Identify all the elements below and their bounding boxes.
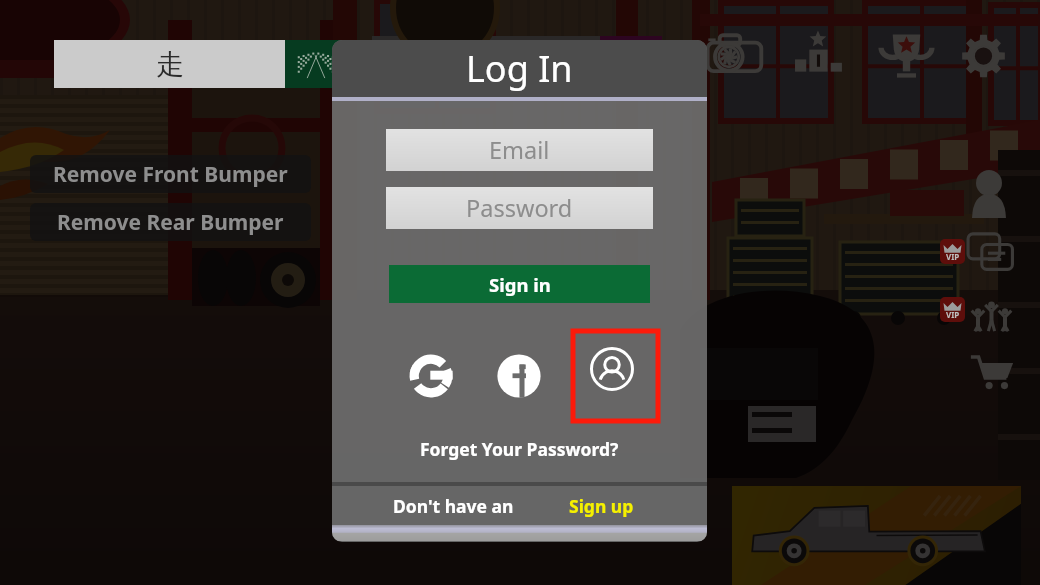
button[interactable]: Trophies xyxy=(880,32,933,80)
button[interactable]: Sign up xyxy=(569,494,634,518)
button[interactable]: Settings xyxy=(960,33,1007,79)
staticText: Forget Your Password? xyxy=(420,437,619,461)
button[interactable]: Continue as guest xyxy=(573,331,658,421)
button[interactable]: Sign in with Facebook xyxy=(486,331,552,421)
button[interactable]: 走 xyxy=(54,40,285,88)
staticText: Sign up xyxy=(569,494,634,518)
button[interactable]: Remove Rear Bumper xyxy=(30,203,311,241)
staticText: Email xyxy=(489,134,550,166)
button[interactable]: Password xyxy=(386,187,653,229)
button[interactable]: Advertisement xyxy=(732,486,1021,585)
button[interactable]: Email xyxy=(386,129,653,171)
staticText: VIP xyxy=(946,309,960,320)
button[interactable]: Sign in xyxy=(389,265,650,303)
staticText: Remove Rear Bumper xyxy=(57,208,284,237)
staticText: Log In xyxy=(466,44,573,93)
button[interactable]: Photo mode xyxy=(706,32,763,78)
button[interactable]: Remove Front Bumper xyxy=(30,155,311,193)
staticText: Password xyxy=(466,192,573,224)
button[interactable]: Friends xyxy=(969,297,1014,333)
staticText: 走 xyxy=(156,47,184,82)
staticText: VIP xyxy=(946,251,960,262)
button[interactable]: Sign in with Google xyxy=(398,331,464,421)
button[interactable]: Don't have an xyxy=(393,494,514,518)
staticText: Remove Front Bumper xyxy=(53,160,288,189)
button[interactable]: Shop xyxy=(968,352,1016,394)
button[interactable]: Forget Your Password? xyxy=(332,437,707,461)
button[interactable]: VIP chat xyxy=(940,239,965,264)
staticText: Don't have an xyxy=(393,494,514,518)
button[interactable]: VIP friends xyxy=(940,297,965,322)
staticText: Sign in xyxy=(489,272,551,297)
button[interactable]: Profile xyxy=(964,168,1014,218)
button[interactable]: Leaderboard xyxy=(794,30,845,79)
button[interactable]: Chat xyxy=(965,231,1016,279)
button[interactable]: Start race xyxy=(285,40,347,88)
